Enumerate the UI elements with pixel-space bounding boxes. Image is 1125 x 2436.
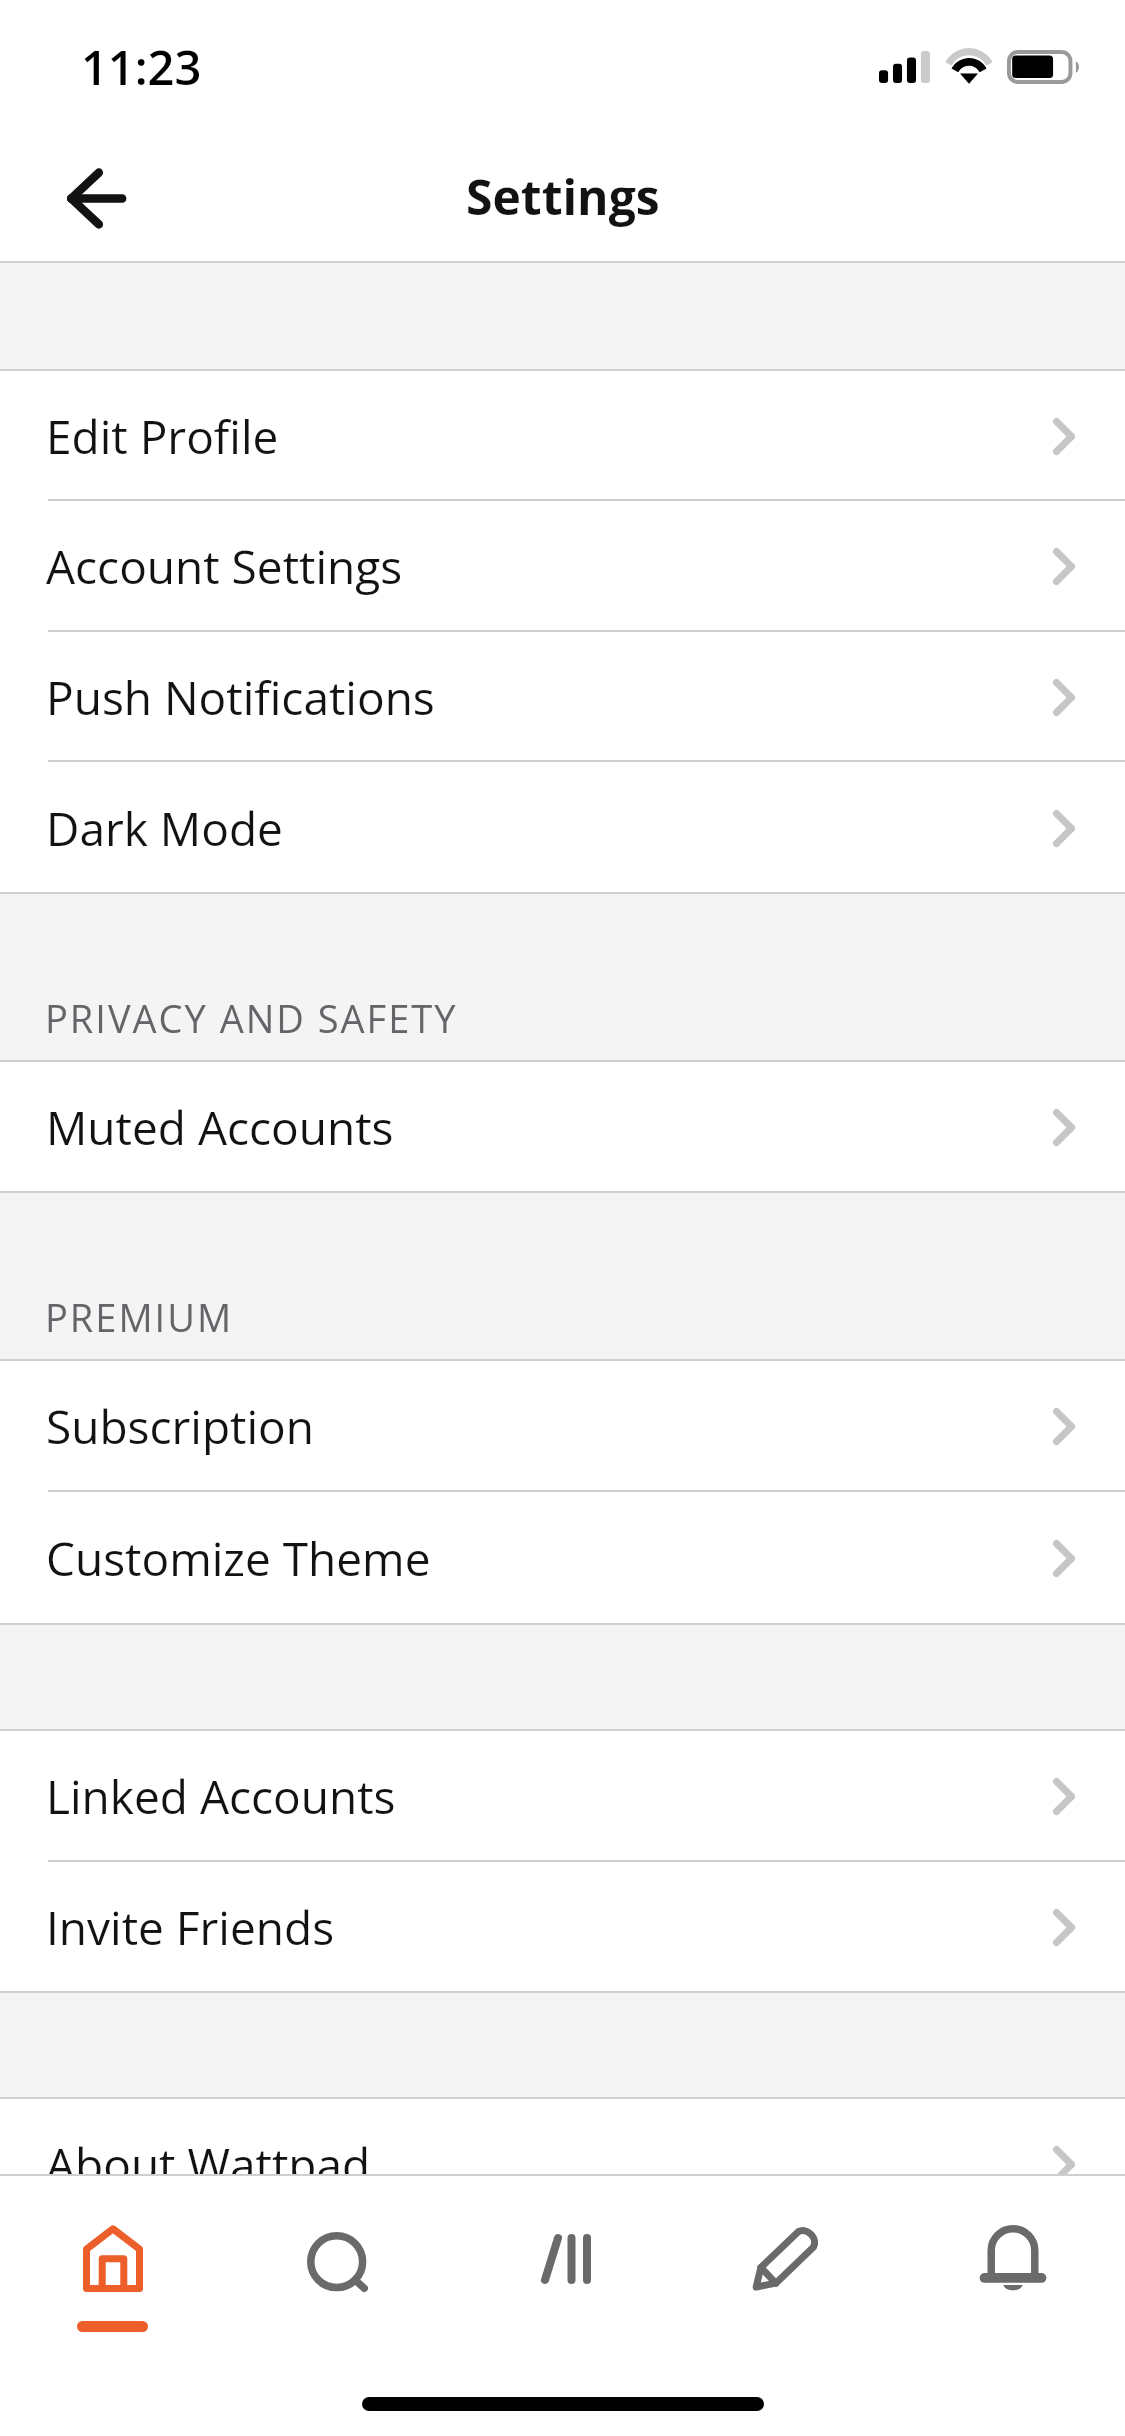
button[interactable]: Subscription <box>0 1361 1125 1492</box>
staticText: 11:23 <box>81 35 202 99</box>
staticText: Muted Accounts <box>46 1096 394 1159</box>
button[interactable]: Push Notifications <box>0 632 1125 762</box>
button[interactable]: Dark Mode <box>0 762 1125 894</box>
button[interactable]: Linked Accounts <box>0 1731 1125 1862</box>
staticText: Account Settings <box>46 535 403 598</box>
staticText: Customize Theme <box>46 1527 431 1590</box>
button[interactable]: Library <box>450 2176 675 2336</box>
staticText: Linked Accounts <box>46 1765 396 1828</box>
staticText: Dark Mode <box>46 797 283 860</box>
staticText: PRIVACY AND SAFETY <box>45 992 458 1044</box>
button[interactable]: Edit Profile <box>0 371 1125 501</box>
staticText: Settings <box>466 164 660 229</box>
staticText: Invite Friends <box>46 1896 335 1959</box>
button[interactable]: Invite Friends <box>0 1862 1125 1993</box>
button[interactable]: Write <box>675 2176 900 2336</box>
staticText: Edit Profile <box>46 405 279 468</box>
button[interactable]: Customize Theme <box>0 1492 1125 1625</box>
button[interactable]: Muted Accounts <box>0 1062 1125 1193</box>
staticText: Push Notifications <box>46 666 435 729</box>
button[interactable]: Notifications <box>900 2176 1125 2336</box>
staticText: About Wattpad <box>46 2133 371 2176</box>
button[interactable]: About Wattpad <box>0 2099 1125 2176</box>
staticText: PREMIUM <box>45 1291 234 1343</box>
button[interactable]: Home <box>0 2176 225 2336</box>
button[interactable]: Search <box>225 2176 450 2336</box>
button[interactable]: Back <box>46 148 146 248</box>
staticText: Subscription <box>46 1395 314 1458</box>
button[interactable]: Account Settings <box>0 501 1125 632</box>
